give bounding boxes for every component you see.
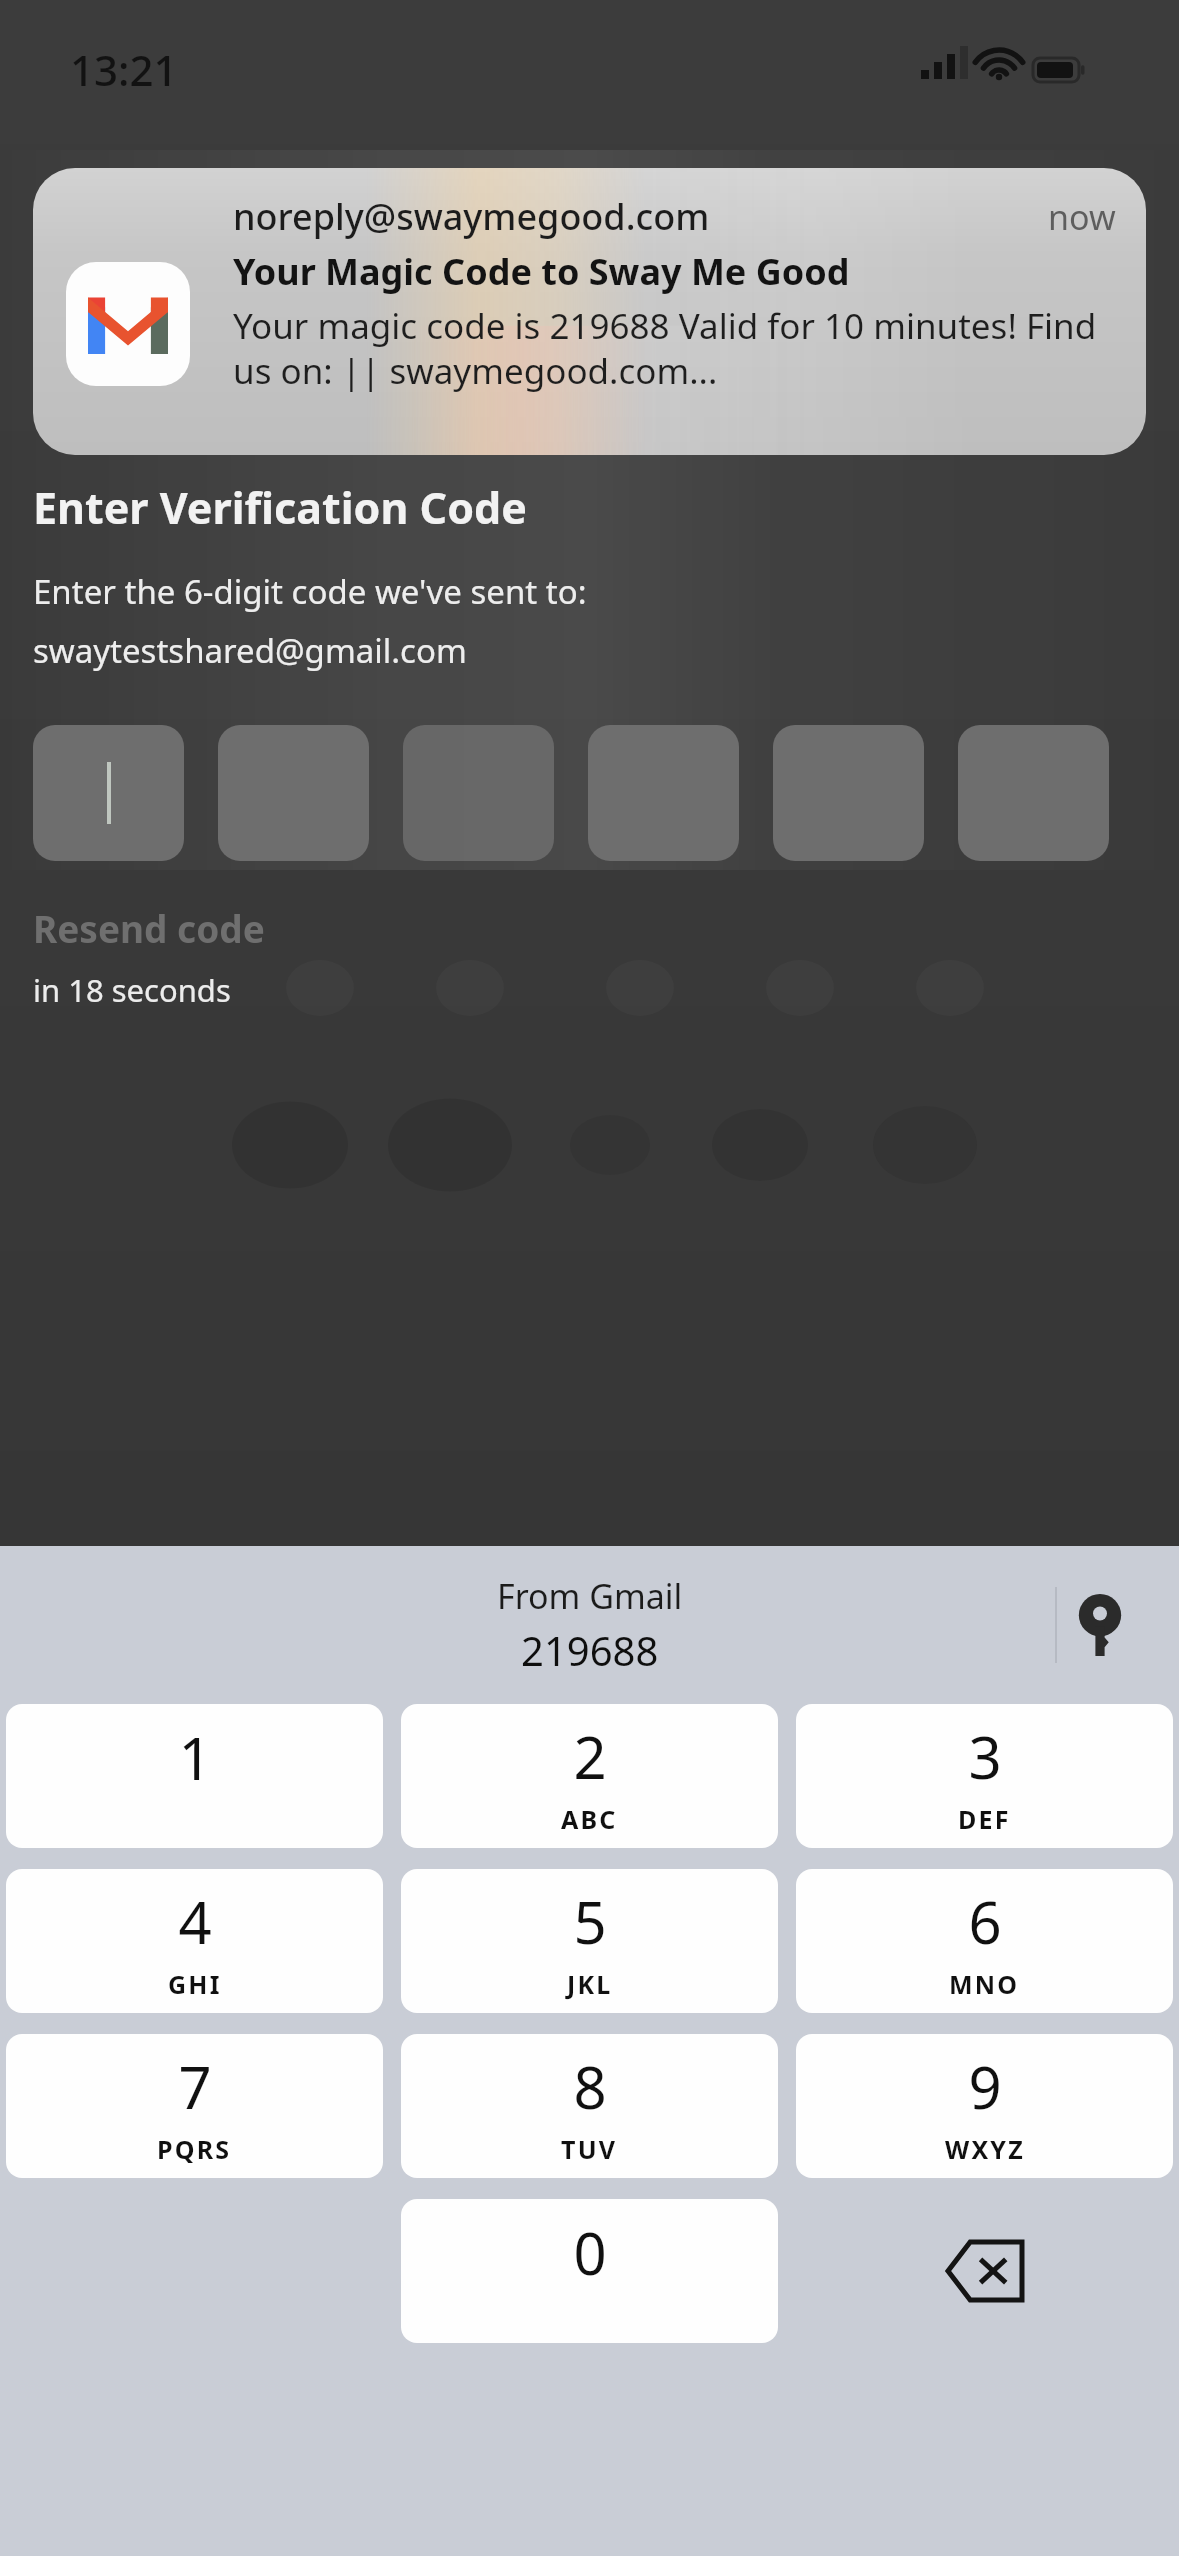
staticText: now: [1048, 194, 1116, 240]
button[interactable]: Backspace: [796, 2199, 1173, 2343]
staticText: 9: [968, 2047, 1002, 2126]
staticText: 219688: [521, 1623, 659, 1677]
button[interactable]: 2: [401, 1704, 778, 1848]
staticText: PQRS: [157, 2132, 232, 2166]
button[interactable]: 4: [6, 1869, 383, 2013]
staticText: 1: [178, 1718, 212, 1797]
button[interactable]: [588, 725, 739, 861]
staticText: 7: [178, 2047, 212, 2126]
button[interactable]: Resend code: [33, 903, 265, 953]
staticText: 6: [968, 1882, 1002, 1961]
button[interactable]: 1: [6, 1704, 383, 1848]
staticText: Your Magic Code to Sway Me Good: [233, 247, 850, 296]
button[interactable]: [33, 725, 184, 861]
staticText: 5: [573, 1882, 607, 1961]
staticText: 13:21: [70, 41, 178, 98]
button[interactable]: Passwords: [1057, 1582, 1143, 1668]
button[interactable]: 7: [6, 2034, 383, 2178]
button[interactable]: [773, 725, 924, 861]
staticText: 8: [573, 2047, 607, 2126]
button[interactable]: 8: [401, 2034, 778, 2178]
staticText: in 18 seconds: [33, 969, 231, 1011]
staticText: 2: [573, 1717, 607, 1796]
staticText: DEF: [958, 1802, 1011, 1836]
staticText: noreply@swaymegood.com: [233, 192, 1048, 241]
staticText: MNO: [949, 1967, 1020, 2001]
button[interactable]: 3: [796, 1704, 1173, 1848]
button[interactable]: noreply@swaymegood.com: [33, 168, 1146, 455]
button[interactable]: [218, 725, 369, 861]
staticText: Enter Verification Code: [33, 478, 527, 537]
staticText: GHI: [168, 1967, 222, 2001]
staticText: From Gmail: [497, 1573, 683, 1619]
staticText: Your magic code is 219688 Valid for 10 m…: [233, 302, 1116, 395]
button[interactable]: 5: [401, 1869, 778, 2013]
staticText: TUV: [561, 2132, 618, 2166]
button[interactable]: 0: [401, 2199, 778, 2343]
staticText: WXYZ: [945, 2132, 1025, 2166]
staticText: 0: [573, 2213, 607, 2292]
button[interactable]: 9: [796, 2034, 1173, 2178]
staticText: Resend code: [33, 903, 265, 953]
button[interactable]: 6: [796, 1869, 1173, 2013]
staticText: 4: [178, 1882, 212, 1961]
staticText: 3: [968, 1717, 1002, 1796]
staticText: ABC: [561, 1802, 618, 1836]
staticText: Enter the 6-digit code we've sent to:: [33, 569, 587, 614]
staticText: JKL: [567, 1967, 613, 2001]
button[interactable]: [958, 725, 1109, 861]
staticText: swaytestshared@gmail.com: [33, 628, 467, 673]
button[interactable]: [403, 725, 554, 861]
